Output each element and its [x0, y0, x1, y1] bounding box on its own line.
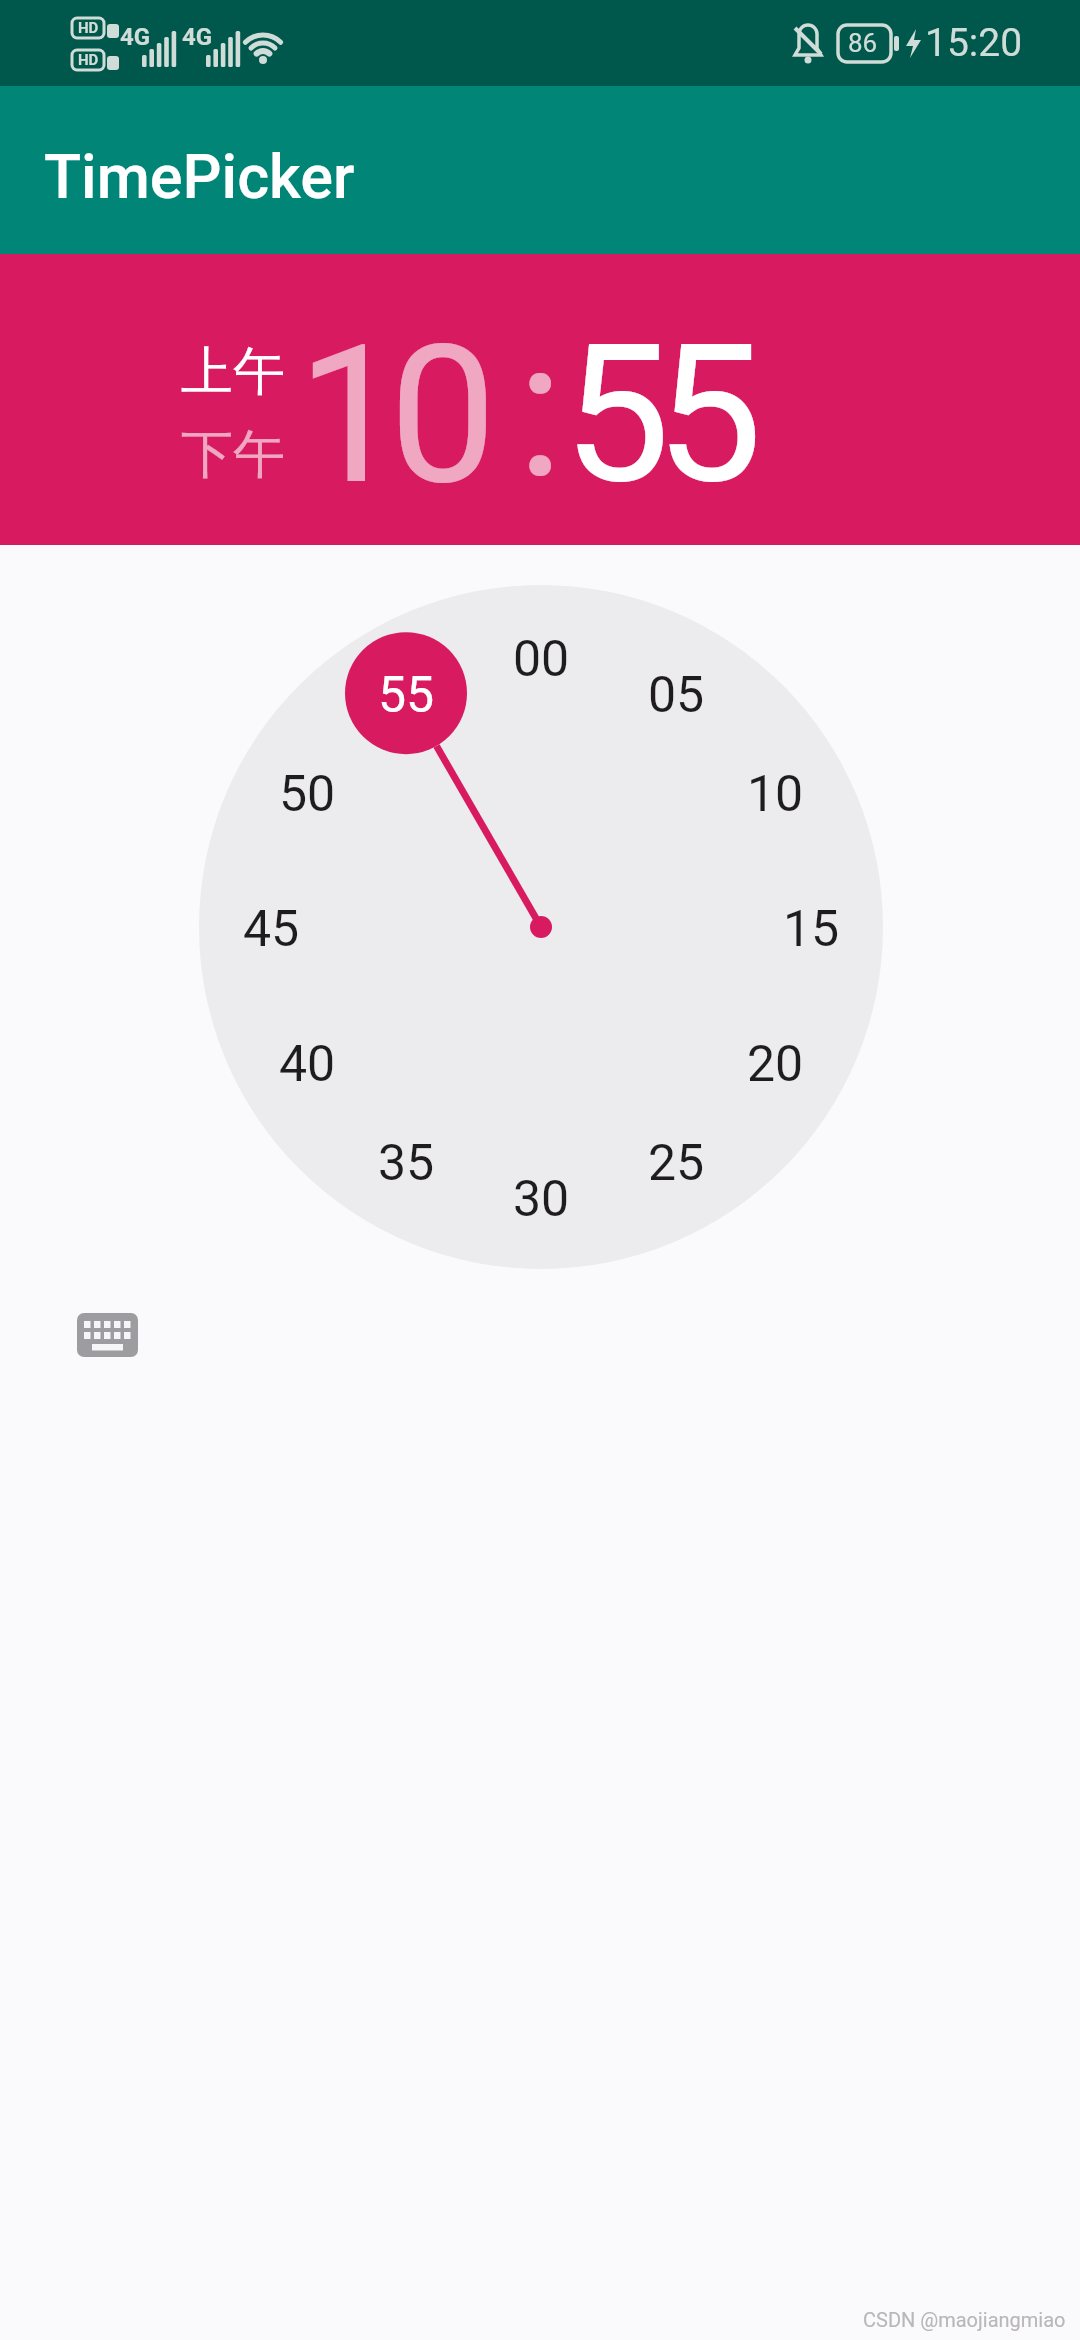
button[interactable]: 10 — [249, 301, 529, 531]
staticText: : — [517, 298, 549, 522]
staticText: CSDN @maojiangmiao — [863, 2308, 1066, 2331]
staticText: 10 — [747, 765, 804, 824]
staticText: 45 — [243, 900, 300, 959]
staticText: 4G — [120, 23, 151, 49]
button[interactable]: 20 — [730, 1019, 820, 1109]
staticText: 20 — [747, 1035, 804, 1094]
button[interactable]: 55 — [515, 300, 795, 530]
button[interactable]: 上午 — [174, 337, 292, 407]
staticText: 35 — [378, 1134, 435, 1193]
staticText: 30 — [513, 1170, 570, 1229]
staticText: 下午 — [181, 422, 285, 488]
button[interactable]: 40 — [262, 1019, 352, 1109]
button[interactable]: 50 — [262, 749, 352, 839]
staticText: 上午 — [181, 339, 285, 405]
staticText: 40 — [279, 1035, 336, 1094]
button[interactable]: 45 — [226, 884, 316, 974]
staticText: 15:20 — [925, 20, 1023, 66]
staticText: 86 — [848, 28, 878, 58]
button[interactable]: 55 — [361, 650, 451, 740]
staticText: 55 — [563, 303, 748, 527]
button[interactable]: 35 — [361, 1118, 451, 1208]
staticText: TimePicker — [44, 141, 355, 212]
staticText: 55 — [378, 666, 435, 725]
staticText: 50 — [279, 765, 336, 824]
staticText: 25 — [648, 1134, 705, 1193]
button[interactable]: 10 — [730, 749, 820, 839]
button[interactable]: 00 — [496, 614, 586, 704]
staticText: 05 — [648, 666, 705, 725]
staticText: 15 — [783, 900, 840, 959]
button[interactable]: 30 — [496, 1154, 586, 1244]
button[interactable] — [70, 1306, 145, 1364]
button[interactable]: 下午 — [174, 420, 292, 490]
button[interactable]: 15 — [766, 884, 856, 974]
button[interactable]: 25 — [631, 1118, 721, 1208]
staticText: 00 — [513, 630, 570, 689]
staticText: HD — [78, 19, 99, 37]
staticText: 10 — [297, 304, 482, 528]
button[interactable]: 05 — [631, 650, 721, 740]
staticText: HD — [78, 51, 99, 69]
staticText: 4G — [182, 23, 213, 49]
